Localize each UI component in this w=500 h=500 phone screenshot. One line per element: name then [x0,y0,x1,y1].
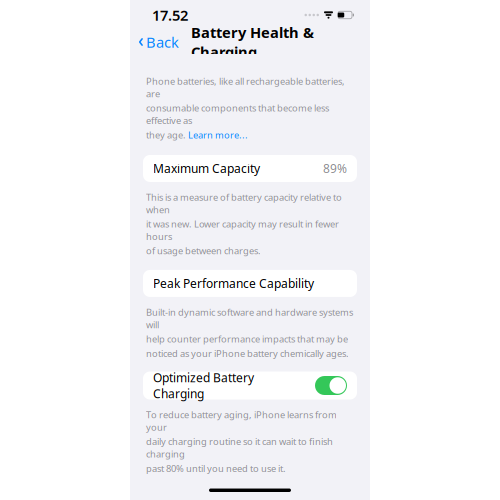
staticText: Peak Performance Capability [153,275,314,291]
staticText: Back [146,32,179,52]
staticText: To reduce battery aging, iPhone learns f… [146,408,337,433]
staticText: Optimized Battery Charging [153,370,254,401]
staticText: it was new. Lower capacity may result in… [146,218,339,243]
staticText: past 80% until you need to use it. [146,462,286,474]
staticText: of usage between charges. [146,244,261,257]
staticText: Maximum Capacity [153,160,260,176]
staticText: This is a measure of battery capacity re… [146,191,342,216]
staticText: noticed as your iPhone battery chemicall… [146,347,349,359]
staticText: Phone batteries, like all rechargeable b… [146,75,345,100]
staticText: help counter performance impacts that ma… [146,333,348,345]
staticText: Built-in dynamic software and hardware s… [146,306,353,331]
button[interactable]: Learn more... [188,129,248,141]
staticText: consumable components that become less e… [146,102,329,127]
button[interactable]: Maximum Capacity [143,155,357,182]
staticText: 89% [323,160,347,176]
button[interactable]: Optimized Battery Charging [143,371,357,399]
staticText: daily charging routine so it can wait to… [146,435,333,460]
staticText: 17.52 [152,5,188,25]
button[interactable]: Back [130,31,183,53]
staticText: Battery Health & Charging [191,22,314,61]
button[interactable]: Peak Performance Capability [143,270,357,297]
staticText: Learn more... [188,129,248,141]
staticText: they age. [146,129,188,141]
